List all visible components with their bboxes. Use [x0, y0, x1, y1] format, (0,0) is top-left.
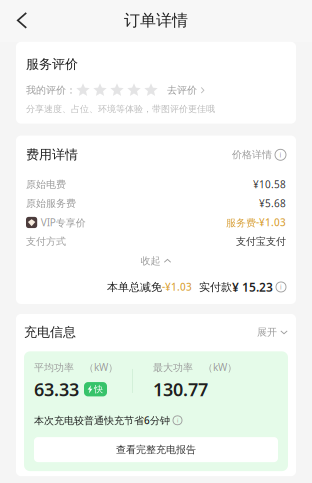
staticText: 收起 [140, 255, 160, 267]
staticText: 130.77 [153, 377, 208, 401]
staticText: 充电信息 [24, 324, 76, 340]
button[interactable]: 收起 [26, 252, 286, 270]
staticText: ¥ 15.23 [232, 279, 273, 295]
staticText: 服务费-¥1.03 [226, 216, 286, 229]
staticText: 订单详情 [124, 10, 188, 30]
staticText: i [177, 416, 178, 424]
button[interactable]: 去评价 [167, 84, 206, 97]
staticText: 63.33 [34, 377, 79, 401]
staticText: 平均功率 （kW） [34, 360, 118, 374]
staticText: ¥10.58 [253, 178, 286, 191]
staticText: 查看完整充电报告 [116, 443, 196, 456]
staticText: VIP专享价 [41, 216, 86, 229]
button[interactable]: Back [0, 1, 44, 39]
staticText: i [280, 283, 282, 291]
button[interactable]: 展开 [257, 326, 288, 338]
staticText: 去评价 [167, 84, 197, 97]
staticText: ¥5.68 [259, 197, 286, 210]
staticText: 原始电费 [26, 178, 66, 191]
staticText: 支付宝支付 [236, 235, 286, 248]
staticText: i [279, 150, 281, 160]
staticText: 分享速度、占位、环境等体验，带图评价更佳哦 [26, 103, 215, 115]
staticText: -¥1.03 [162, 280, 192, 294]
staticText: 费用详情 [26, 147, 78, 163]
staticText: 实付款 [199, 280, 232, 294]
staticText: 原始服务费 [26, 197, 76, 210]
staticText: 本次充电较普通快充节省6分钟 [34, 413, 170, 427]
staticText: 我的评价： [26, 84, 76, 97]
staticText: 快 [94, 384, 103, 395]
staticText: 支付方式 [26, 235, 66, 248]
staticText: 价格详情 [232, 148, 272, 161]
button[interactable]: 价格详情 [232, 148, 286, 161]
staticText: 最大功率 （kW） [153, 360, 237, 374]
button[interactable]: 查看完整充电报告 [34, 437, 278, 462]
staticText: 展开 [257, 326, 277, 338]
staticText: 本单总减免 [107, 280, 162, 294]
staticText: 服务评价 [26, 56, 78, 72]
